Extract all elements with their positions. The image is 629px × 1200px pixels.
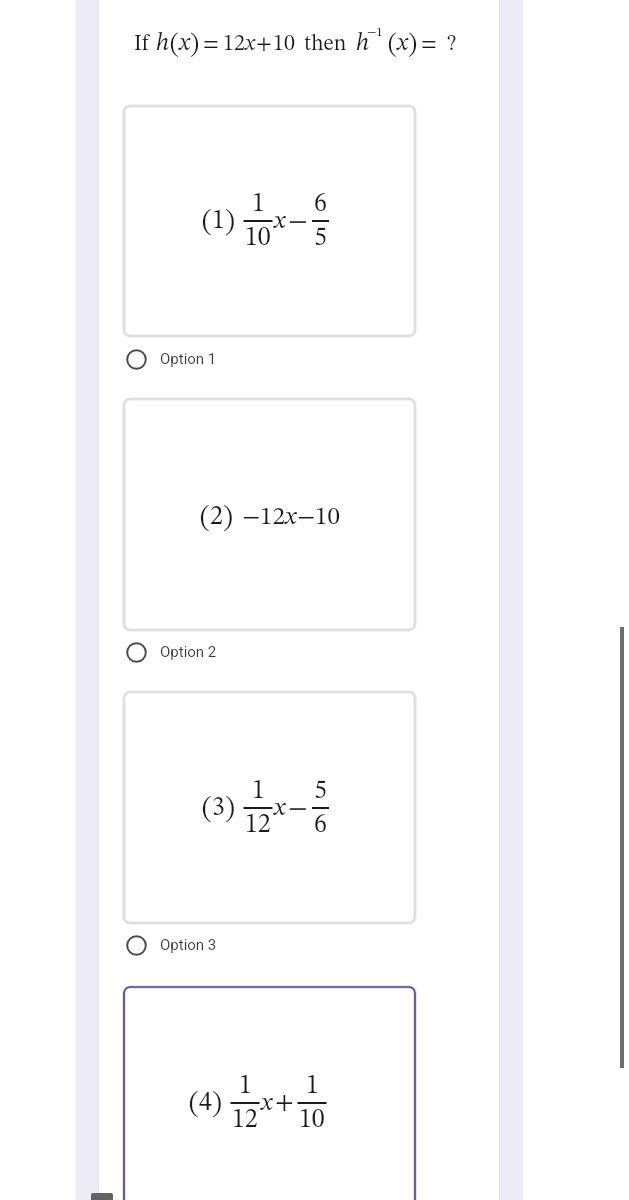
staticText: 6 [314, 191, 327, 217]
staticText: 10 [273, 33, 295, 55]
staticText: −1 [367, 26, 383, 39]
staticText: ( [170, 32, 179, 58]
button[interactable]: ( [124, 106, 415, 336]
staticText: 10 [299, 1107, 325, 1133]
staticText: ) [225, 795, 235, 823]
button[interactable]: ( [124, 399, 415, 630]
staticText: h [356, 32, 370, 56]
staticText: 1 [252, 191, 265, 217]
staticText: ? [447, 33, 457, 55]
staticText: 1 [306, 1073, 319, 1099]
button[interactable]: Option 3 [124, 931, 324, 959]
staticText: ( [189, 1090, 199, 1118]
staticText: −10 [297, 505, 340, 530]
staticText: Option 3 [160, 936, 217, 954]
staticText: − [288, 795, 308, 822]
staticText: = [421, 33, 437, 55]
staticText: ) [223, 504, 233, 532]
staticText: = [203, 33, 219, 55]
staticText: 5 [314, 225, 327, 251]
button[interactable]: Option 2 [124, 638, 324, 666]
staticText: ) [225, 208, 235, 236]
staticText: then [304, 33, 347, 55]
staticText: −12 [242, 505, 285, 530]
staticText: ) [190, 32, 199, 58]
staticText: ( [388, 32, 397, 58]
staticText: Option 2 [160, 643, 217, 661]
staticText: 1 [239, 1073, 252, 1099]
staticText: 10 [245, 225, 271, 251]
staticText: Option 1 [160, 350, 217, 368]
staticText: 4 [199, 1090, 212, 1116]
staticText: 12 [245, 812, 271, 838]
staticText: 3 [212, 795, 225, 821]
staticText: 1 [212, 208, 225, 234]
staticText: ( [202, 208, 212, 236]
staticText: 1 [252, 778, 265, 804]
staticText: 12 [232, 1107, 258, 1133]
staticText: x [274, 209, 286, 234]
staticText: x [274, 796, 286, 821]
staticText: − [288, 208, 308, 235]
staticText: x [245, 33, 255, 55]
staticText: 5 [314, 778, 327, 804]
button[interactable]: ( [124, 692, 415, 923]
staticText: + [275, 1090, 294, 1116]
staticText: If [134, 33, 149, 55]
button[interactable]: ( [124, 987, 415, 1200]
button[interactable]: Option 1 [124, 345, 324, 373]
staticText: 2 [210, 504, 223, 530]
staticText: ) [212, 1090, 222, 1118]
staticText: ( [200, 504, 210, 532]
staticText: x [285, 505, 297, 530]
staticText: x [179, 32, 190, 56]
staticText: ( [202, 795, 212, 823]
staticText: x [397, 32, 408, 56]
button[interactable]: Tool [91, 1193, 113, 1200]
staticText: h [156, 32, 170, 56]
staticText: ) [408, 32, 417, 58]
staticText: + [256, 33, 272, 55]
staticText: 6 [314, 812, 327, 838]
staticText: x [261, 1091, 273, 1116]
staticText: 12 [223, 33, 245, 55]
